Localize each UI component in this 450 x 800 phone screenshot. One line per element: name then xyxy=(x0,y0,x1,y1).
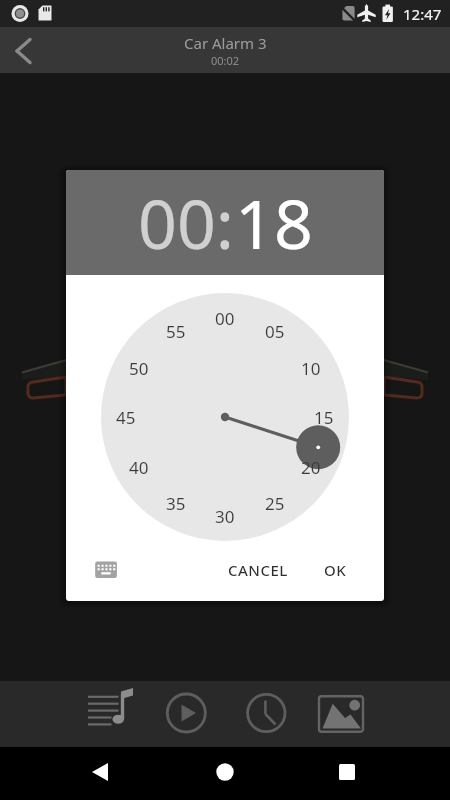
button[interactable] xyxy=(0,27,46,73)
button[interactable] xyxy=(158,685,214,741)
staticText: 40 xyxy=(129,456,149,479)
staticText: 15 xyxy=(314,406,334,429)
staticText: 00:02 xyxy=(211,53,240,68)
staticText: 50 xyxy=(129,357,149,380)
button[interactable] xyxy=(323,748,371,796)
button[interactable] xyxy=(82,685,138,741)
staticText: 45 xyxy=(116,406,136,429)
staticText: 18 xyxy=(235,176,313,269)
staticText: 10 xyxy=(301,357,321,380)
staticText: CANCEL xyxy=(228,560,288,580)
staticText: 55 xyxy=(166,320,186,343)
button[interactable]: CANCEL xyxy=(216,552,300,588)
staticText: OK xyxy=(324,560,347,580)
staticText: 20 xyxy=(301,456,321,479)
staticText: 35 xyxy=(166,492,186,515)
staticText: 25 xyxy=(265,492,285,515)
button[interactable]: OK xyxy=(310,552,360,588)
staticText: 05 xyxy=(265,320,285,343)
staticText: 30 xyxy=(215,505,235,528)
staticText: 00 xyxy=(215,307,235,330)
button[interactable] xyxy=(238,685,294,741)
button[interactable] xyxy=(313,685,369,741)
staticText: Car Alarm 3 xyxy=(184,33,267,53)
button[interactable] xyxy=(76,748,124,796)
staticText: 12:47 xyxy=(403,4,442,24)
button[interactable] xyxy=(90,554,122,586)
staticText: 00: xyxy=(138,176,235,269)
button[interactable] xyxy=(201,748,249,796)
